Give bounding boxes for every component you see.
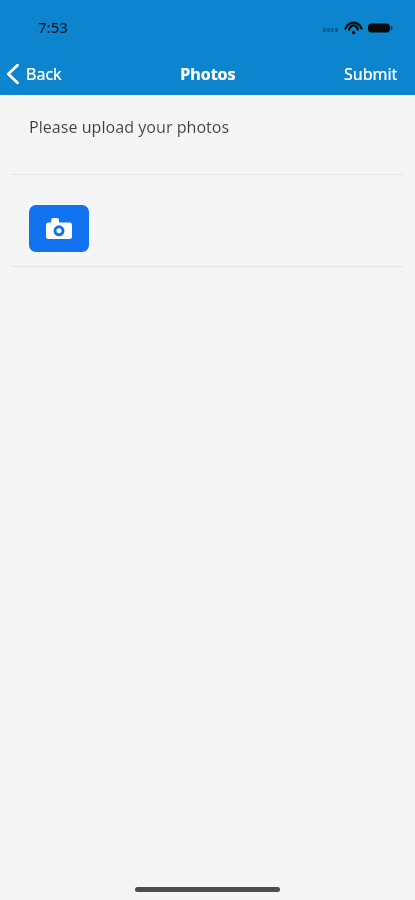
staticText: Submit — [344, 63, 398, 85]
button[interactable]: Take photo — [29, 205, 89, 252]
staticText: Please upload your photos — [29, 116, 230, 138]
staticText: Photos — [180, 63, 236, 85]
button[interactable]: Submit — [330, 57, 415, 91]
staticText: Back — [26, 63, 62, 85]
button[interactable]: Back — [0, 59, 74, 89]
staticText: 7:53 — [38, 17, 68, 37]
